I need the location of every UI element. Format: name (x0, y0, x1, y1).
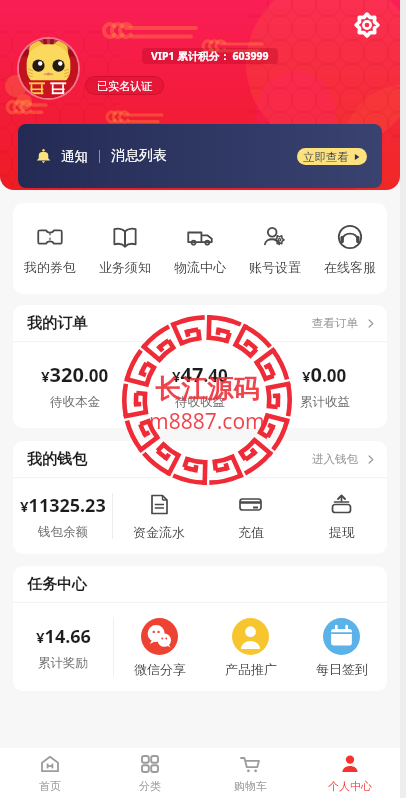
button[interactable]: 充值 (205, 478, 296, 554)
staticText: 我的订单 (27, 314, 87, 333)
staticText: 微信分享 (134, 661, 186, 677)
staticText: VIP1 累计积分： 603999 (151, 49, 269, 63)
button[interactable]: 微信分享 (114, 603, 205, 691)
staticText: 查看订单 (312, 316, 358, 330)
staticText: 账号设置 (249, 259, 301, 275)
staticText: 任务中心 (27, 575, 87, 594)
staticText: 我的券包 (24, 259, 76, 275)
staticText: 通知 (61, 148, 88, 165)
staticText: 累计奖励 (38, 655, 88, 671)
button[interactable]: 每日签到 (296, 603, 387, 691)
staticText: ¥14.66 (36, 624, 91, 649)
button[interactable]: 账号设置 (237, 203, 312, 294)
button[interactable]: 资金流水 (113, 478, 205, 554)
button[interactable]: 已实名认证 (85, 76, 164, 95)
staticText: 钱包余额 (38, 524, 88, 540)
staticText: 待收本金 (50, 394, 100, 410)
button[interactable]: 提现 (296, 478, 387, 554)
staticText: 分类 (139, 779, 161, 793)
button[interactable]: 通知 (18, 124, 382, 188)
button[interactable]: 业务须知 (87, 203, 162, 294)
staticText: 在线客服 (324, 259, 376, 275)
button[interactable]: 首页 (0, 748, 100, 798)
button[interactable]: 立即查看 (297, 148, 367, 165)
button[interactable]: 产品推广 (205, 603, 296, 691)
staticText: 购物车 (234, 779, 267, 793)
staticText: 每日签到 (316, 661, 368, 677)
button[interactable]: 进入钱包 (312, 452, 374, 466)
staticText: 我的钱包 (27, 450, 87, 469)
staticText: m8887.com (149, 407, 265, 436)
staticText: 首页 (39, 779, 61, 793)
button[interactable]: 查看订单 (312, 316, 374, 330)
staticText: 已实名认证 (97, 79, 152, 93)
button[interactable]: 个人中心 (300, 748, 400, 798)
staticText: 充值 (238, 524, 264, 540)
staticText: 产品推广 (225, 661, 277, 677)
staticText: 累计收益 (300, 394, 350, 410)
staticText: ¥320.00 (41, 361, 109, 388)
staticText: ¥0.00 (302, 361, 347, 388)
staticText: 业务须知 (99, 259, 151, 275)
staticText: 物流中心 (174, 259, 226, 275)
staticText: 消息列表 (111, 147, 167, 165)
staticText: ¥11325.23 (20, 493, 106, 518)
button[interactable]: 分类 (100, 748, 200, 798)
button[interactable]: 我的券包 (13, 203, 87, 294)
staticText: 待收收益 (175, 394, 225, 410)
staticText: 长江源码 (155, 373, 259, 406)
button[interactable]: Settings (354, 12, 380, 38)
staticText: 进入钱包 (312, 452, 358, 466)
button[interactable]: 购物车 (200, 748, 300, 798)
button[interactable]: Profile avatar (19, 39, 78, 98)
staticText: 资金流水 (133, 524, 185, 540)
button[interactable]: 物流中心 (162, 203, 237, 294)
staticText: 提现 (329, 524, 355, 540)
staticText: 立即查看 (303, 150, 349, 164)
staticText: ¥47.40 (172, 361, 228, 388)
button[interactable]: 在线客服 (312, 203, 387, 294)
staticText: 个人中心 (328, 779, 372, 793)
